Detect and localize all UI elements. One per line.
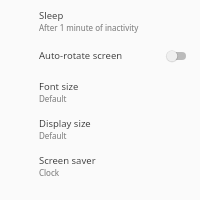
button[interactable]: Font size (0, 71, 200, 108)
staticText: Screen saver (39, 154, 96, 167)
button[interactable]: Auto-rotate screen (165, 48, 186, 68)
staticText: Sleep (39, 9, 64, 22)
staticText: Auto-rotate screen (39, 49, 123, 62)
button[interactable]: Sleep (0, 0, 200, 40)
staticText: Clock (39, 167, 60, 178)
staticText: Default (39, 93, 67, 104)
staticText: Default (39, 130, 67, 141)
staticText: Display size (39, 117, 91, 130)
staticText: After 1 minute of inactivity (39, 22, 139, 33)
button[interactable]: Display size (0, 108, 200, 145)
button[interactable]: Auto-rotate screen (0, 40, 200, 71)
staticText: Font size (39, 80, 79, 93)
button[interactable]: Screen saver (0, 145, 200, 182)
